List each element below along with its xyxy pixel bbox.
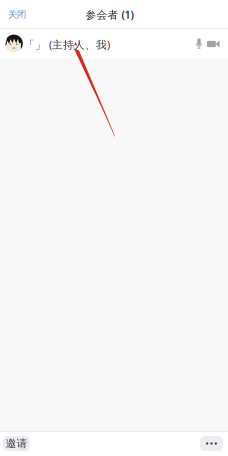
staticText: 关闭 bbox=[8, 9, 26, 20]
staticText: 参会者 (1) bbox=[85, 7, 133, 22]
button[interactable]: More options bbox=[200, 436, 223, 451]
button[interactable]: Mute bbox=[192, 29, 204, 59]
button[interactable]: 关闭 bbox=[0, 3, 36, 26]
button[interactable]: 邀请 bbox=[3, 436, 30, 451]
button[interactable]: 「」 (主持人、我) bbox=[0, 29, 192, 59]
staticText: 「」 (主持人、我) bbox=[24, 37, 110, 52]
staticText: 邀请 bbox=[5, 437, 27, 450]
button[interactable]: Stop video bbox=[204, 29, 228, 59]
